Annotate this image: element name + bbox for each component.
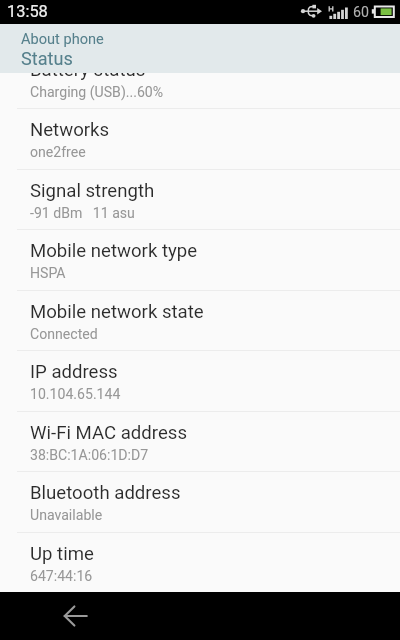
staticText: Connected [30, 326, 98, 343]
staticText: Charging (USB)...60% [30, 84, 164, 101]
staticText: IP address [30, 361, 118, 383]
staticText: Bluetooth address [30, 482, 181, 504]
staticText: Signal strength [30, 180, 155, 202]
staticText: HSPA [30, 265, 66, 282]
staticText: About phone [21, 30, 104, 47]
button[interactable]: Mobile network state [0, 290, 400, 350]
staticText: 60 [353, 4, 369, 21]
staticText: Up time [30, 543, 94, 565]
staticText: one2free [30, 144, 86, 161]
staticText: Wi-Fi MAC address [30, 422, 187, 444]
button[interactable]: Signal strength [0, 169, 400, 229]
button[interactable]: Up time [0, 532, 400, 592]
button[interactable]: Wi-Fi MAC address [0, 411, 400, 471]
staticText: Mobile network state [30, 301, 204, 323]
staticText: Battery status [30, 59, 146, 81]
staticText: -91 dBm 11 asu [30, 205, 135, 222]
staticText: 38:BC:1A:06:1D:D7 [30, 447, 149, 464]
staticText: Networks [30, 119, 110, 141]
button[interactable]: Networks [0, 108, 400, 168]
staticText: 10.104.65.144 [30, 386, 121, 403]
button[interactable]: IP address [0, 350, 400, 410]
button[interactable]: Back [52, 592, 100, 640]
button[interactable]: Mobile network type [0, 229, 400, 289]
button[interactable]: Battery status [0, 48, 400, 108]
staticText: Unavailable [30, 507, 103, 524]
staticText: 647:44:16 [30, 568, 93, 585]
staticText: 13:58 [7, 2, 48, 21]
staticText: Mobile network type [30, 240, 198, 262]
button[interactable]: Bluetooth address [0, 471, 400, 531]
staticText: Status [21, 48, 73, 69]
